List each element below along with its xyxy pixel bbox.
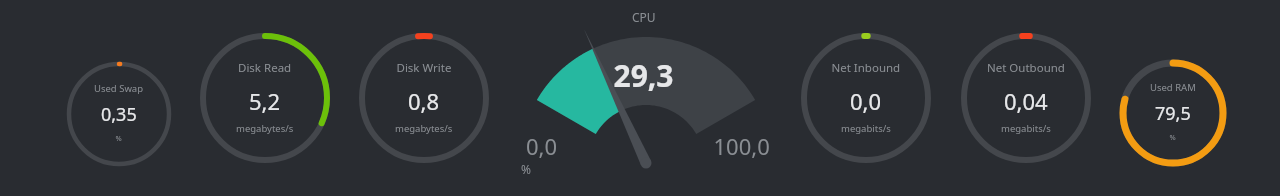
button[interactable]: System monitor dashboard [0,0,1280,196]
